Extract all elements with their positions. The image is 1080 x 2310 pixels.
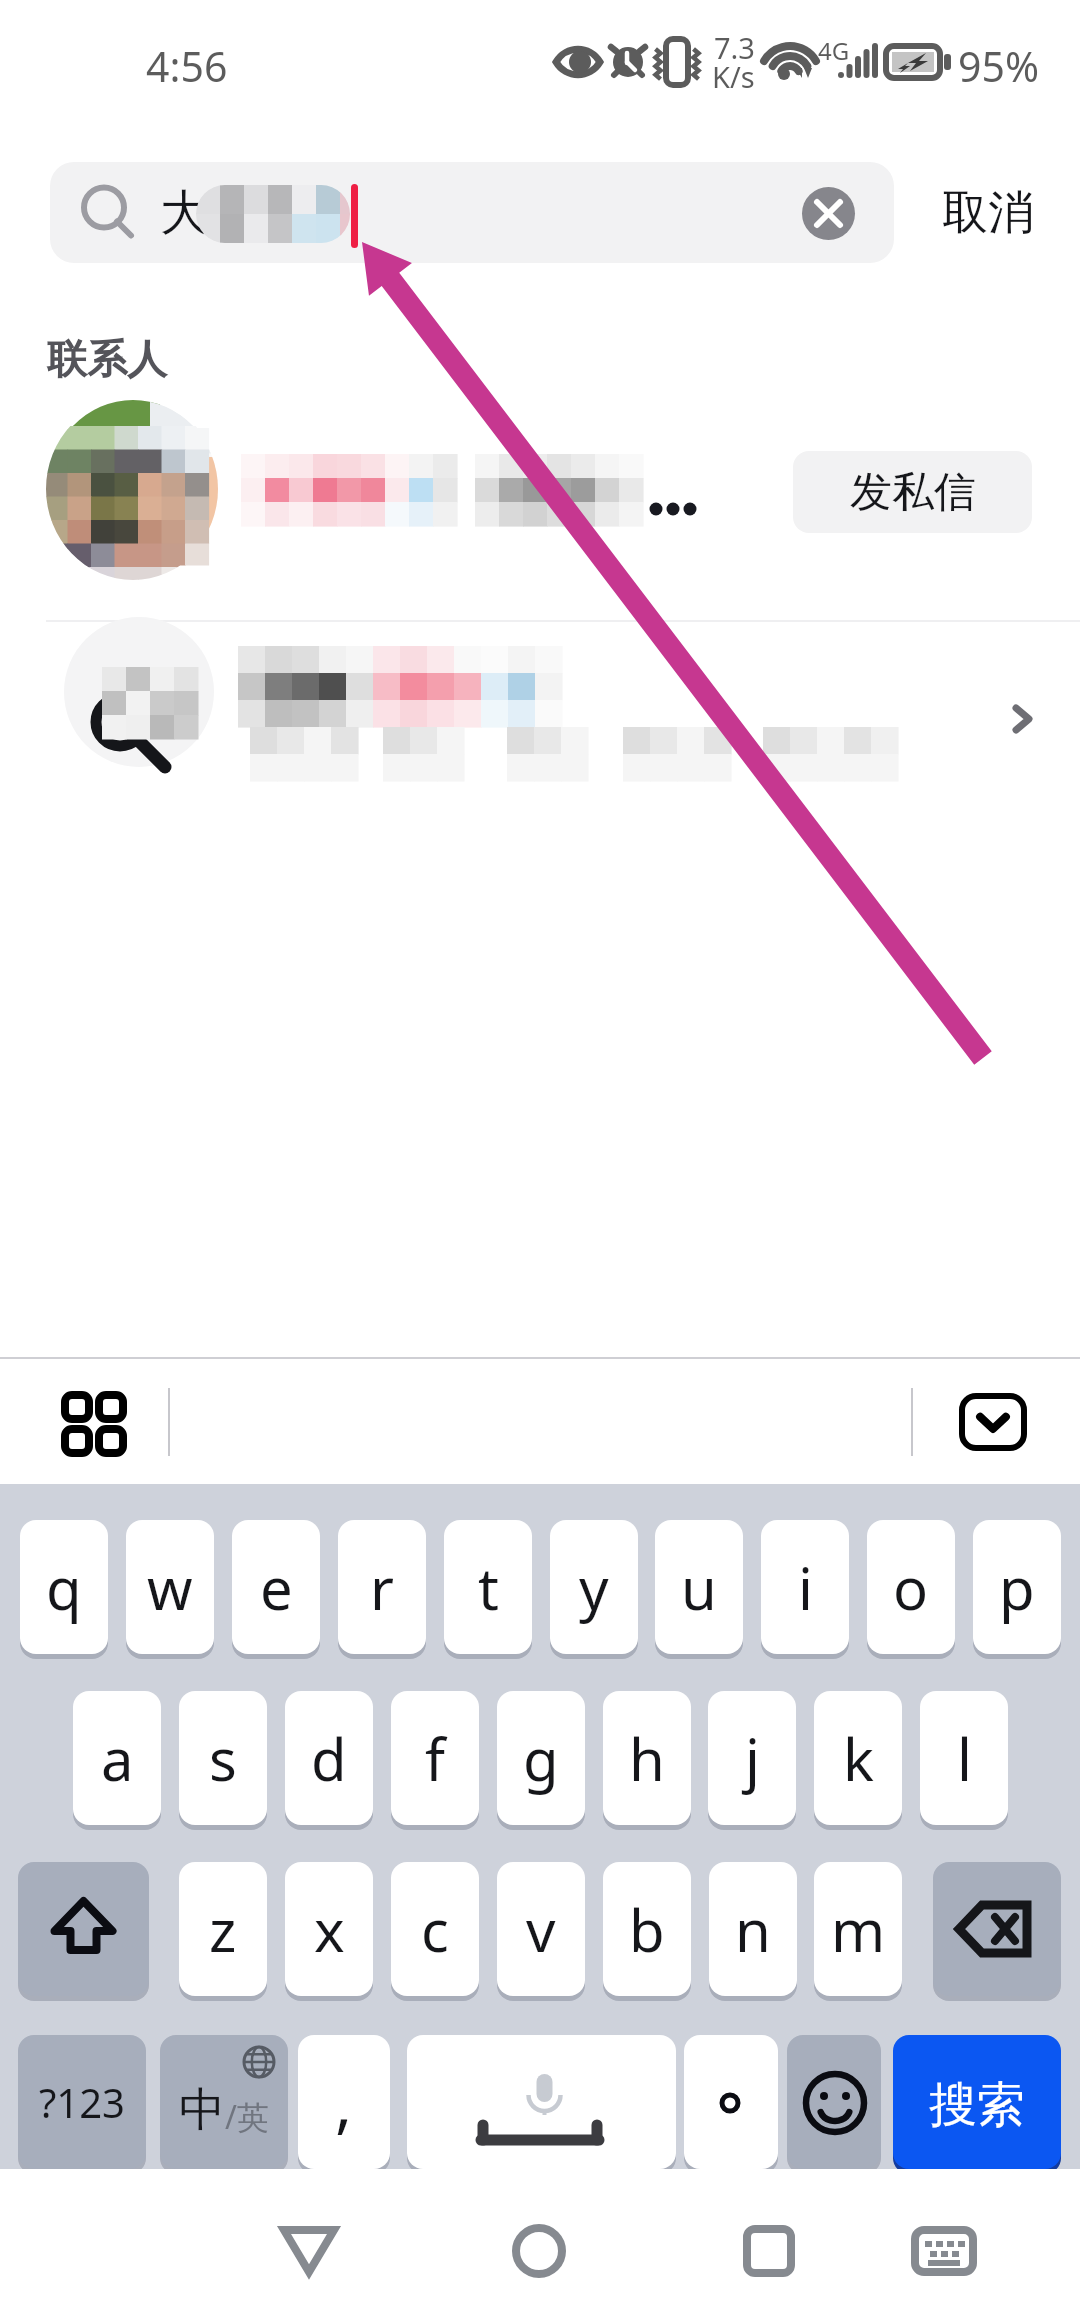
button[interactable]: Switch keyboard (884, 2211, 1004, 2291)
button[interactable]: s (179, 1691, 267, 1825)
staticText: 取消 (942, 184, 1034, 242)
button[interactable]: Hide keyboard (955, 1384, 1031, 1460)
button[interactable]: a (73, 1691, 161, 1825)
button[interactable]: Space (407, 2035, 676, 2169)
button[interactable]: i (761, 1520, 849, 1654)
staticText: p (999, 1548, 1035, 1627)
staticText: v (526, 1890, 556, 1969)
button[interactable]: z (179, 1862, 267, 1996)
staticText: q (46, 1548, 82, 1627)
button[interactable]: Home (479, 2211, 599, 2291)
staticText: j (745, 1719, 760, 1798)
button[interactable]: k (814, 1691, 902, 1825)
button[interactable]: e (232, 1520, 320, 1654)
staticText: d (311, 1719, 347, 1798)
button[interactable]: p (973, 1520, 1061, 1654)
button[interactable]: Backspace (933, 1862, 1061, 1996)
staticText: m (831, 1890, 886, 1969)
button[interactable]: b (603, 1862, 691, 1996)
staticText: x (314, 1890, 345, 1969)
button[interactable]: Back (249, 2211, 369, 2291)
staticText: f (425, 1719, 445, 1798)
staticText: c (421, 1890, 449, 1969)
staticText: g (523, 1719, 559, 1798)
staticText: i (798, 1548, 813, 1627)
button[interactable]: q (20, 1520, 108, 1654)
staticText: t (478, 1548, 499, 1627)
button[interactable]: n (709, 1862, 797, 1996)
button[interactable]: o (867, 1520, 955, 1654)
button[interactable]: f (391, 1691, 479, 1825)
staticText: l (957, 1719, 972, 1798)
button[interactable]: ?123 (18, 2035, 146, 2169)
button[interactable]: 中 (160, 2035, 288, 2169)
button[interactable]: w (126, 1520, 214, 1654)
staticText: w (147, 1548, 193, 1627)
button[interactable]: l (920, 1691, 1008, 1825)
staticText: /英 (225, 2095, 269, 2139)
button[interactable]: c (391, 1862, 479, 1996)
staticText: 4G (818, 34, 850, 67)
button[interactable]: m (814, 1862, 902, 1996)
staticText: z (209, 1890, 237, 1969)
staticText: k (843, 1719, 874, 1798)
button[interactable]: 取消 (918, 162, 1058, 263)
button[interactable]: Keyboard layouts (52, 1382, 132, 1462)
button[interactable]: x (285, 1862, 373, 1996)
staticText: e (260, 1548, 293, 1627)
button[interactable]: g (497, 1691, 585, 1825)
staticText: 7.3 (714, 28, 755, 67)
staticText: y (579, 1548, 609, 1627)
button[interactable]: j (708, 1691, 796, 1825)
staticText: 4:56 (146, 38, 228, 94)
button[interactable]: Shift (18, 1862, 149, 1996)
button[interactable]: h (603, 1691, 691, 1825)
staticText: o (893, 1548, 929, 1627)
button[interactable]: 大 (50, 162, 894, 263)
button[interactable]: Full stop (684, 2035, 778, 2169)
button[interactable]: r (338, 1520, 426, 1654)
staticText: s (209, 1719, 237, 1798)
button[interactable]: u (655, 1520, 743, 1654)
button[interactable]: d (285, 1691, 373, 1825)
staticText: 95% (958, 38, 1039, 94)
button[interactable]: 搜索 (893, 2035, 1061, 2169)
button[interactable]: y (550, 1520, 638, 1654)
staticText: n (735, 1890, 771, 1969)
staticText: 发私信 (850, 466, 976, 519)
staticText: , (335, 2059, 353, 2146)
button[interactable]: v (497, 1862, 585, 1996)
staticText: r (370, 1548, 394, 1627)
staticText: b (629, 1890, 665, 1969)
staticText: 中 (179, 2081, 225, 2139)
staticText: h (629, 1719, 665, 1798)
button[interactable]: t (444, 1520, 532, 1654)
button[interactable]: Recents (709, 2211, 829, 2291)
staticText: a (101, 1719, 134, 1798)
staticText: K/s (712, 57, 755, 96)
button[interactable] (0, 622, 1080, 822)
staticText: 大 (160, 183, 208, 243)
staticText: u (681, 1548, 717, 1627)
button[interactable]: Clear (790, 176, 866, 250)
staticText: 联系人 (47, 334, 167, 384)
staticText: 搜索 (929, 2075, 1025, 2135)
button[interactable] (0, 390, 1080, 618)
staticText: ?123 (39, 2075, 125, 2129)
button[interactable]: Emoji (787, 2035, 881, 2169)
button[interactable]: 发私信 (793, 451, 1032, 533)
button[interactable]: , (298, 2035, 390, 2169)
